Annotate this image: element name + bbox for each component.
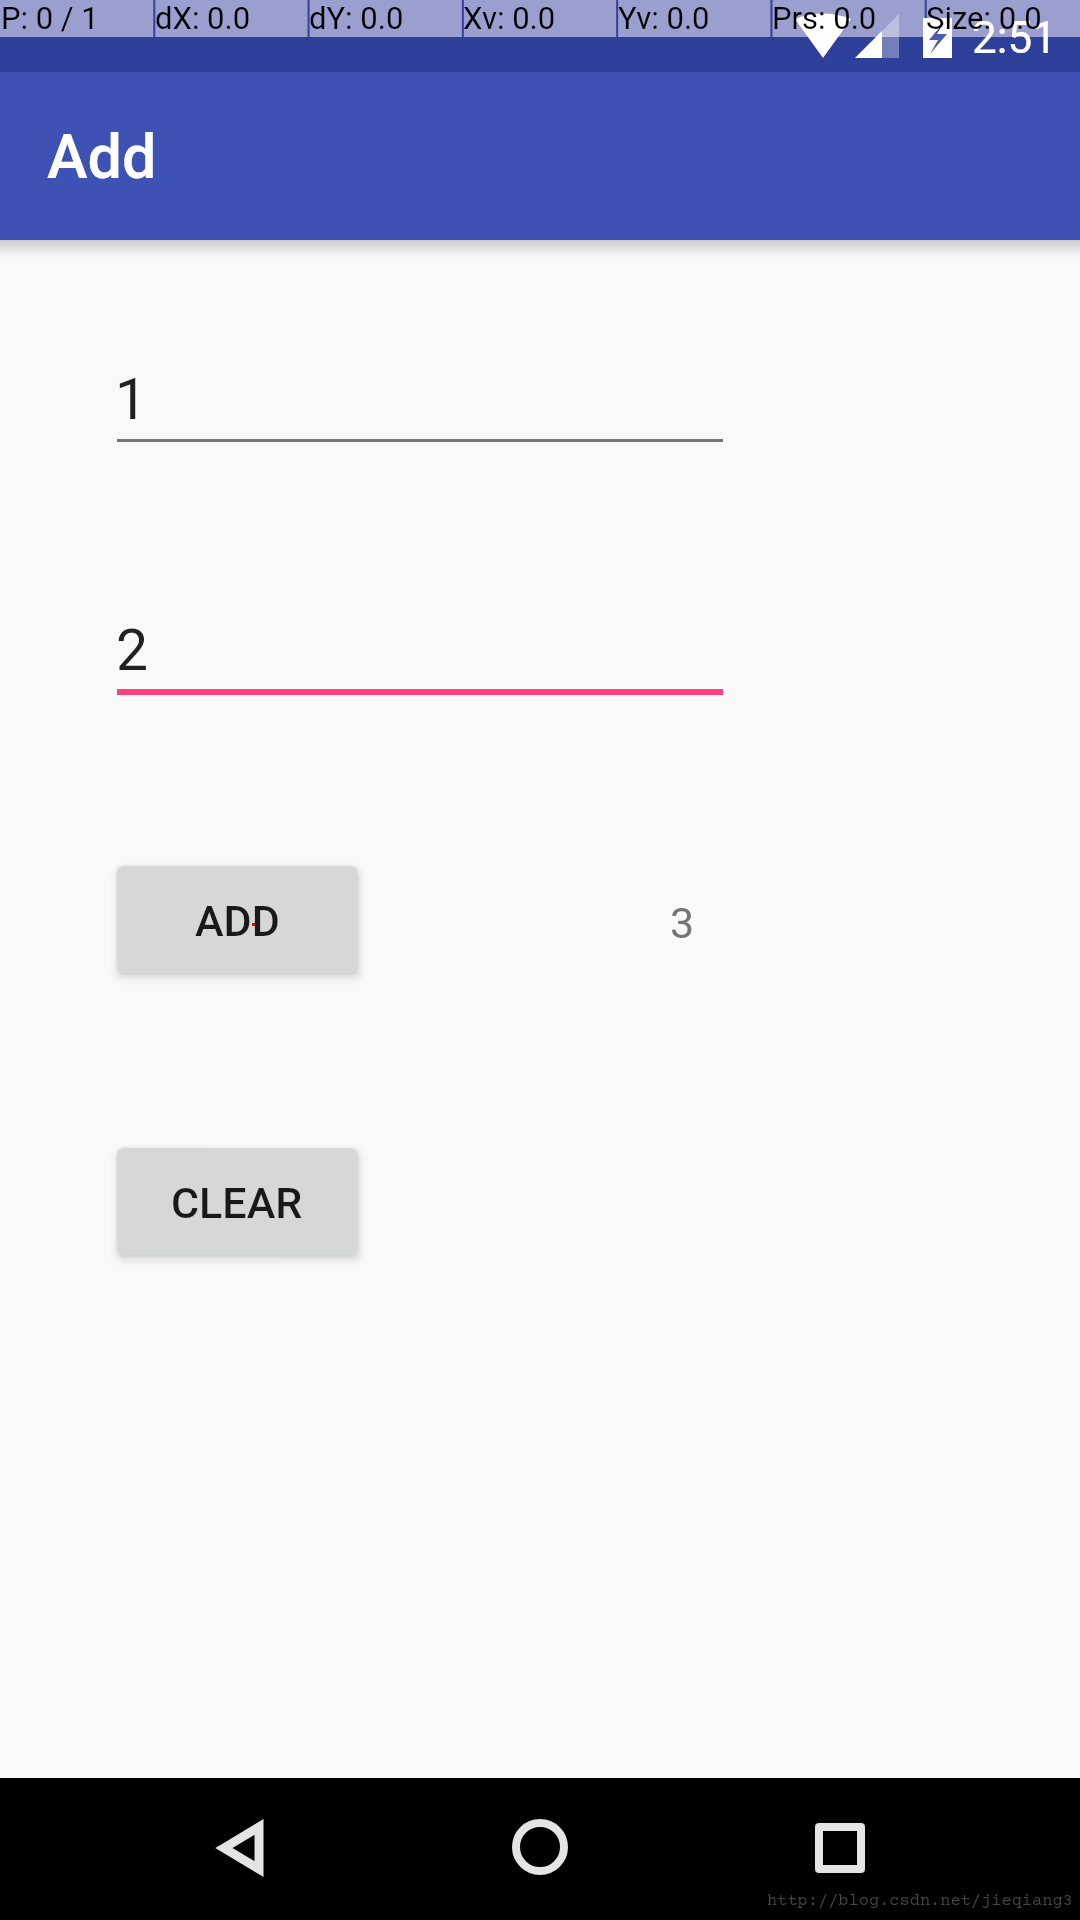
staticText: CLEAR — [171, 1178, 303, 1228]
staticText: P: 0 / 1 — [1, 0, 99, 36]
button[interactable]: ADD — [117, 866, 357, 973]
staticText: 3 — [670, 898, 695, 948]
staticText: Xv: 0.0 — [463, 0, 556, 36]
staticText: dX: 0.0 — [155, 0, 251, 36]
staticText: Size: 0.0 — [926, 0, 1042, 36]
staticText: ADD — [195, 896, 280, 946]
button[interactable]: Second number input — [117, 600, 723, 695]
button[interactable]: CLEAR — [117, 1148, 357, 1255]
staticText: dY: 0.0 — [309, 0, 404, 36]
button[interactable]: First number input — [117, 352, 723, 442]
staticText: Prs: 0.0 — [772, 0, 877, 36]
staticText: 1 — [115, 366, 148, 433]
staticText: 2:51 — [972, 12, 1057, 64]
button[interactable]: Recent apps — [770, 1778, 910, 1920]
button[interactable]: Back — [170, 1778, 310, 1920]
staticText: Add — [47, 121, 157, 192]
button[interactable]: Home — [470, 1778, 610, 1920]
staticText: http://blog.csdn.net/jieqiang3 — [767, 1892, 1073, 1911]
staticText: Yv: 0.0 — [618, 0, 710, 36]
staticText: 2 — [116, 617, 149, 684]
